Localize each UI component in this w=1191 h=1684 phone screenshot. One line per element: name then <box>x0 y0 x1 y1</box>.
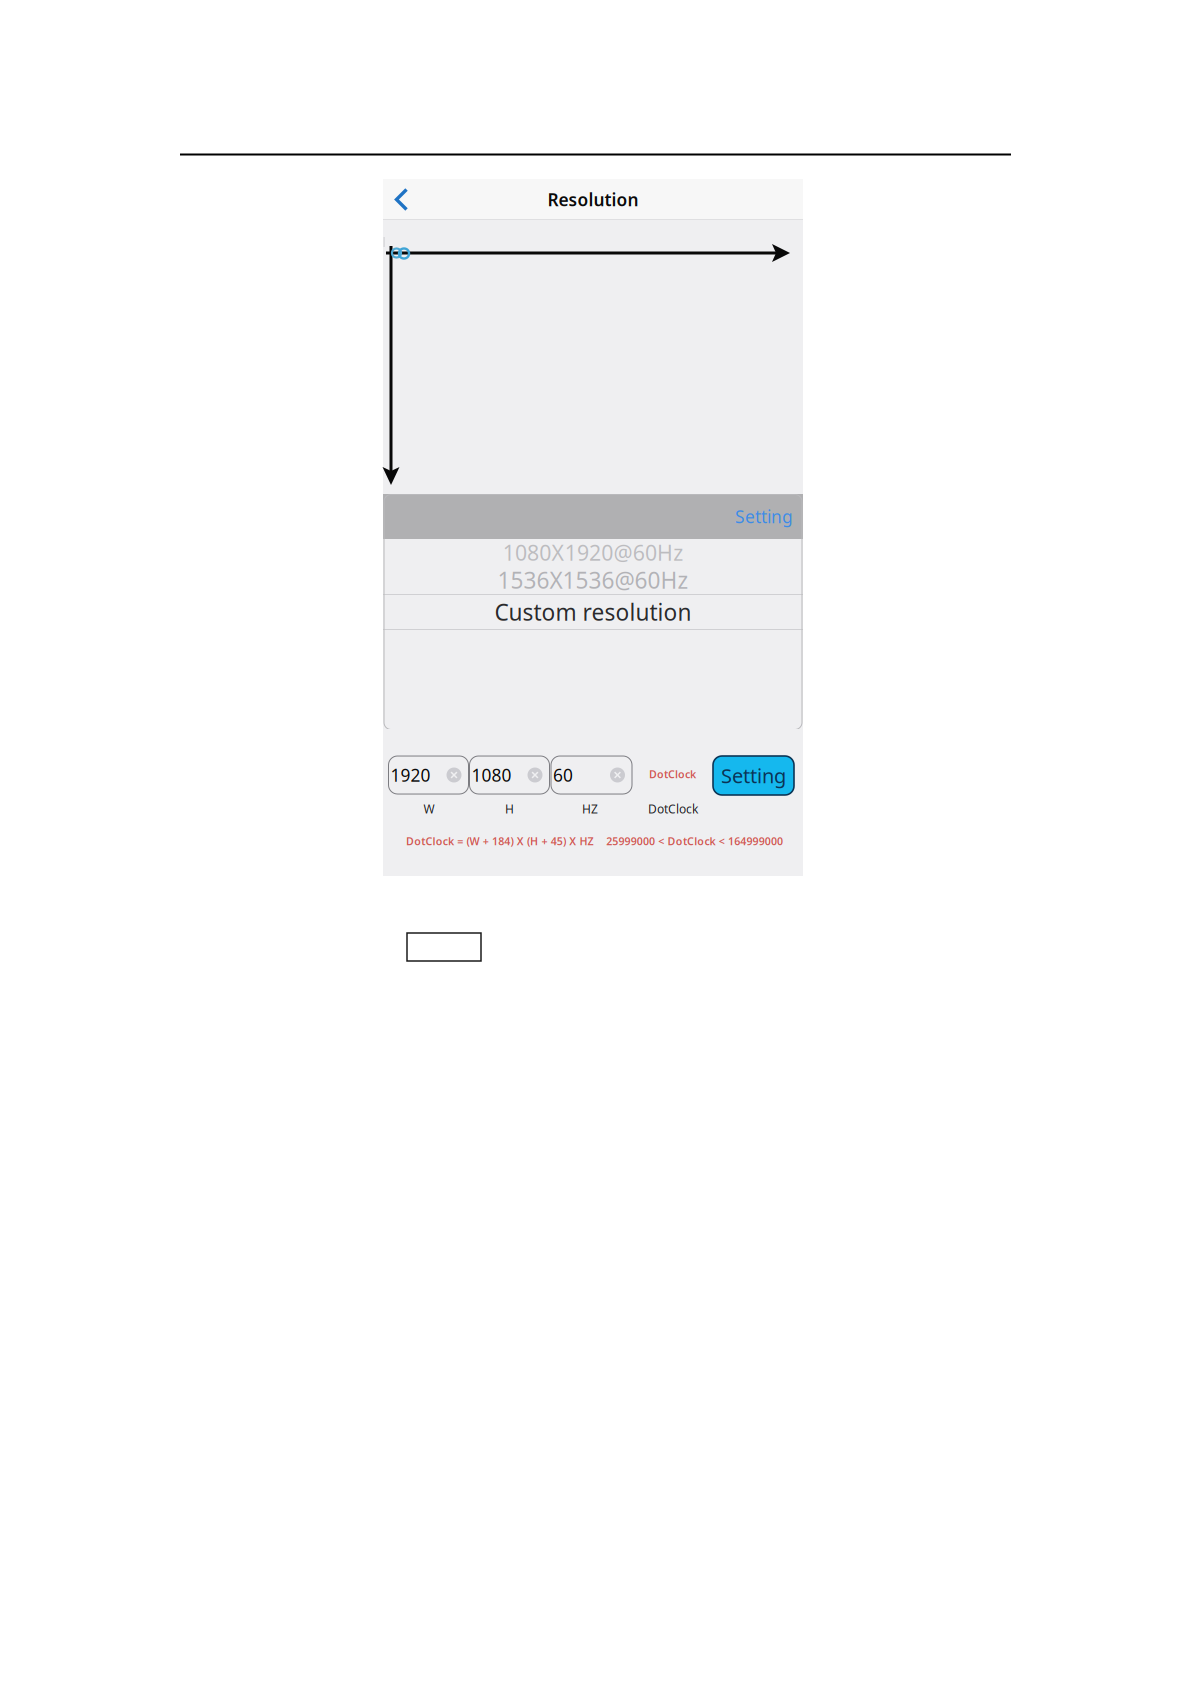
staticText: DotClock <box>648 801 698 817</box>
staticText: 1080 <box>471 763 511 786</box>
staticText: 1536X1536@60Hz <box>497 565 688 595</box>
staticText: H <box>505 801 514 817</box>
button[interactable]: Setting <box>713 756 794 795</box>
staticText: Setting <box>721 762 786 789</box>
staticText: Setting <box>735 505 793 528</box>
staticText: W <box>423 801 434 817</box>
staticText: 60 <box>553 763 573 786</box>
staticText: Custom resolution <box>494 597 691 627</box>
button[interactable]: Back <box>383 179 427 220</box>
staticText: 1920 <box>390 763 430 786</box>
staticText: DotClock = (W + 184) X (H + 45) X HZ 259… <box>406 834 783 848</box>
staticText: 1080X1920@60Hz <box>503 538 683 567</box>
staticText: DotClock <box>649 767 696 781</box>
button[interactable]: Setting <box>735 494 803 539</box>
staticText: Resolution <box>547 188 638 211</box>
staticText: HZ <box>582 801 598 817</box>
